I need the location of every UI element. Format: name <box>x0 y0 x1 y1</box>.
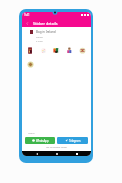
staticText: 2.3 MB <box>36 40 43 43</box>
staticText: WhatsApp <box>36 139 49 143</box>
button[interactable]: Back <box>22 18 33 28</box>
staticText: Sticker details <box>33 21 58 26</box>
button[interactable]: Home <box>54 151 60 156</box>
button[interactable] <box>24 59 37 70</box>
button[interactable]: Recents <box>74 151 80 156</box>
staticText: Add to <box>28 132 35 135</box>
button[interactable]: Telegram <box>57 137 88 144</box>
button[interactable] <box>63 45 76 56</box>
button[interactable] <box>37 45 50 56</box>
button[interactable] <box>76 45 89 56</box>
staticText: Bag in Ireland <box>36 30 56 34</box>
button[interactable]: Back <box>34 151 40 156</box>
staticText: Creator <box>36 36 44 39</box>
button[interactable]: WhatsApp <box>25 137 55 144</box>
staticText: Tap to preview sticker <box>22 146 91 149</box>
button[interactable] <box>24 45 37 56</box>
staticText: 9:41 <box>24 13 30 17</box>
button[interactable] <box>50 45 63 56</box>
staticText: Telegram <box>69 139 81 143</box>
